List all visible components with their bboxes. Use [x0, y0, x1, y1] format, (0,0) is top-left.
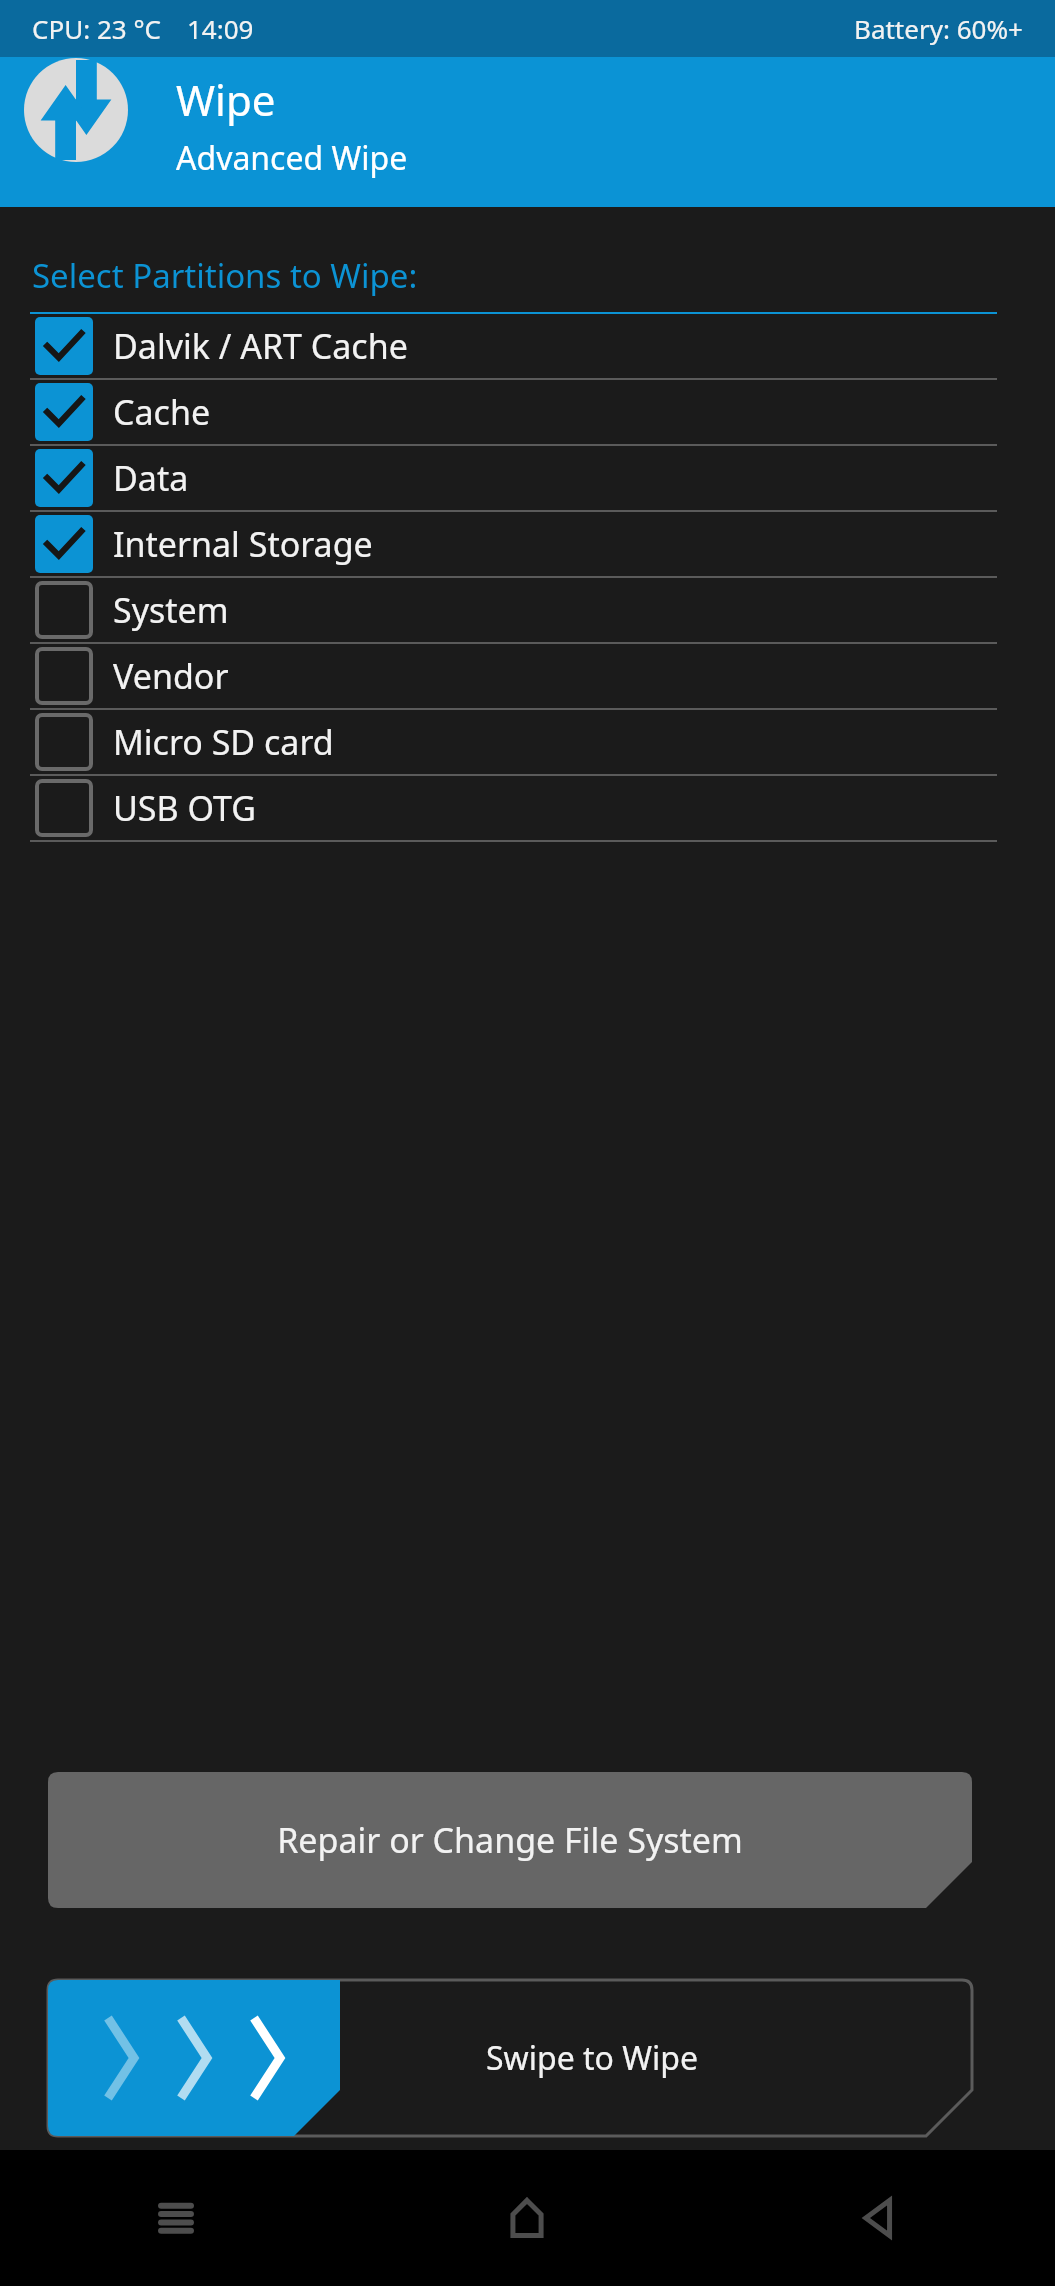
button[interactable]: Repair or Change File System — [48, 1772, 972, 1908]
staticText: 14:09 — [187, 11, 254, 46]
staticText: Swipe to Wipe — [486, 2036, 699, 2080]
staticText: Data — [113, 455, 189, 501]
staticText: Internal Storage — [113, 521, 373, 567]
button[interactable]: Micro SD card — [0, 710, 1055, 776]
button[interactable]: Menu — [0, 2150, 351, 2286]
staticText: CPU: 23 °C — [32, 11, 161, 46]
button[interactable]: Swipe to Wipe — [48, 1980, 340, 2136]
staticText: System — [113, 587, 229, 633]
button[interactable]: USB OTG — [0, 776, 1055, 842]
staticText: Dalvik / ART Cache — [113, 323, 408, 369]
button[interactable]: Internal Storage — [0, 512, 1055, 578]
staticText: Vendor — [113, 653, 229, 699]
button[interactable]: Dalvik / ART Cache — [0, 314, 1055, 380]
staticText: Micro SD card — [113, 719, 334, 765]
button[interactable]: Cache — [0, 380, 1055, 446]
staticText: Cache — [113, 389, 211, 435]
staticText: Battery: 60%+ — [854, 11, 1023, 46]
button[interactable]: Data — [0, 446, 1055, 512]
button[interactable]: Back — [703, 2150, 1055, 2286]
staticText: Advanced Wipe — [176, 136, 408, 180]
button[interactable]: Vendor — [0, 644, 1055, 710]
staticText: USB OTG — [113, 785, 256, 831]
staticText: Repair or Change File System — [277, 1817, 743, 1863]
button[interactable]: Home — [351, 2150, 703, 2286]
staticText: Select Partitions to Wipe: — [32, 253, 418, 298]
button[interactable]: System — [0, 578, 1055, 644]
staticText: Wipe — [176, 71, 276, 128]
